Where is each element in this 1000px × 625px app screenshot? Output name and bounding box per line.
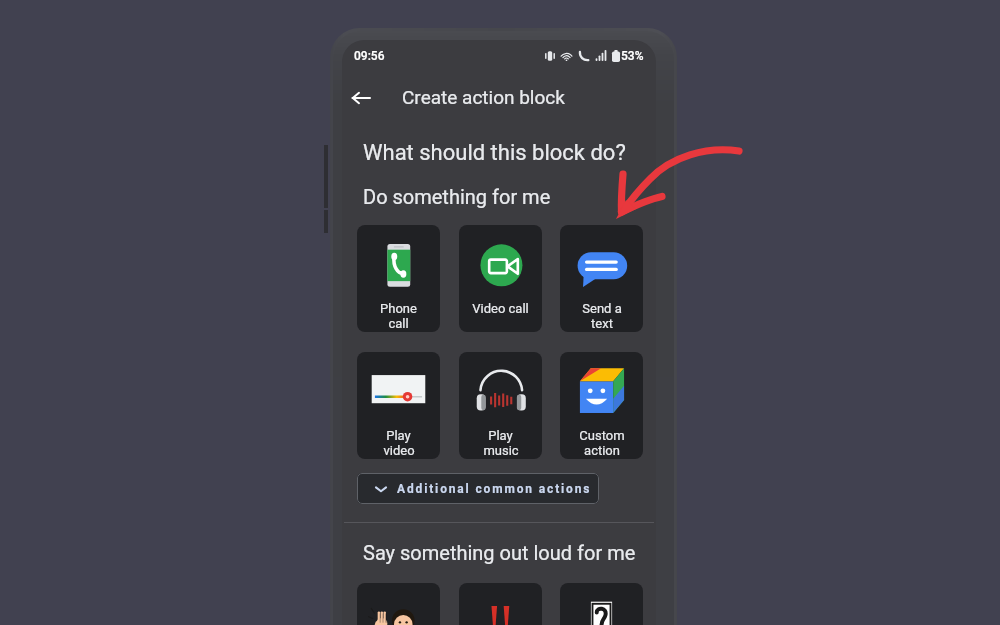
staticText: Say something out loud for me [363, 541, 636, 564]
staticText: What should this block do? [363, 140, 626, 166]
staticText: music [483, 443, 519, 458]
staticText: text [591, 316, 613, 331]
button[interactable]: Say watch out [459, 583, 542, 625]
button[interactable]: Additional common actions [357, 473, 599, 504]
button[interactable]: Play [357, 352, 440, 459]
button[interactable]: Ask a question [560, 583, 643, 625]
staticText: Additional common actions [397, 482, 592, 496]
staticText: 53% [621, 49, 644, 63]
button[interactable]: Custom [560, 352, 643, 459]
button[interactable]: Video call [459, 225, 542, 332]
staticText: video [383, 443, 415, 458]
staticText: 09:56 [354, 49, 385, 63]
button[interactable]: Back [345, 82, 377, 114]
staticText: action [584, 443, 620, 458]
button[interactable]: Phone [357, 225, 440, 332]
staticText: Phone [380, 301, 417, 316]
staticText: call [388, 316, 409, 331]
button[interactable]: Play [459, 352, 542, 459]
staticText: Send a [582, 301, 622, 316]
staticText: Create action block [402, 86, 565, 108]
staticText: Play [386, 428, 411, 443]
staticText: Do something for me [363, 185, 551, 208]
button[interactable]: Say hello [357, 583, 440, 625]
staticText: Play [488, 428, 513, 443]
staticText: Video call [472, 301, 529, 316]
button[interactable]: Send a [560, 225, 643, 332]
staticText: Custom [579, 428, 625, 443]
